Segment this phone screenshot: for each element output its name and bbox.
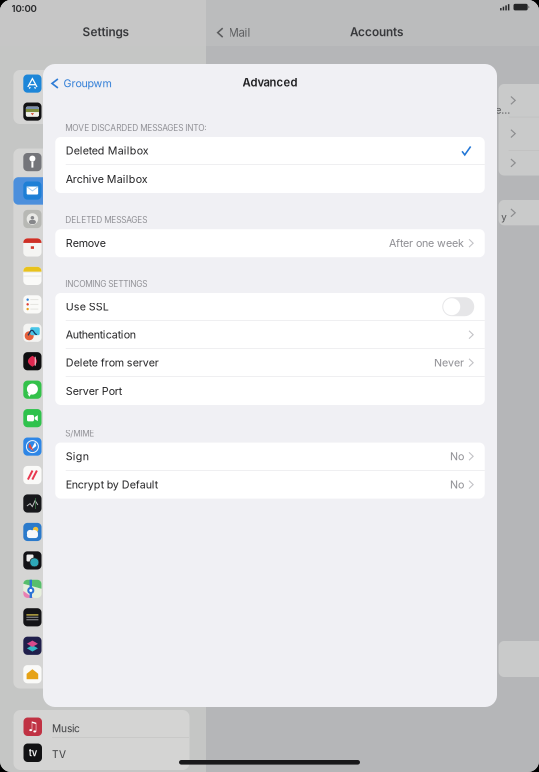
button[interactable]: Authentication — [55, 321, 485, 349]
staticText: Settings — [82, 25, 128, 39]
staticText: Use SSL — [66, 300, 109, 313]
button[interactable]: Server Port — [55, 377, 485, 405]
staticText: Never — [434, 356, 464, 369]
staticText: S/MIME — [65, 428, 94, 438]
button[interactable]: Archive Mailbox — [55, 165, 485, 193]
button[interactable]: Use SSL — [55, 293, 485, 321]
staticText: No — [450, 478, 464, 491]
staticText: Music — [52, 722, 80, 735]
staticText: TV — [52, 748, 66, 761]
staticText: Authentication — [66, 328, 136, 341]
button[interactable]: Groupwm — [43, 70, 119, 97]
staticText: Deleted Mailbox — [66, 144, 149, 157]
button[interactable]: Mail — [209, 19, 258, 47]
staticText: No — [450, 450, 464, 463]
button[interactable]: Delete from server — [55, 349, 485, 377]
staticText: Encrypt by Default — [66, 478, 158, 491]
staticText: Groupwm — [63, 77, 111, 90]
staticText: e... — [495, 103, 510, 116]
staticText: INCOMING SETTINGS — [65, 279, 147, 289]
staticText: After one week — [389, 237, 464, 250]
button[interactable]: Encrypt by Default — [55, 471, 485, 499]
staticText: Sign — [66, 450, 89, 463]
staticText: Archive Mailbox — [66, 172, 148, 185]
button[interactable]: Remove — [55, 229, 485, 257]
staticText: Advanced — [242, 76, 297, 89]
staticText: MOVE DISCARDED MESSAGES INTO: — [65, 123, 206, 133]
staticText: y — [501, 210, 507, 223]
staticText: Server Port — [66, 384, 122, 397]
staticText: Delete from server — [66, 356, 159, 369]
staticText: Remove — [66, 237, 106, 250]
button[interactable]: Deleted Mailbox — [55, 137, 485, 165]
staticText: ♫ — [27, 719, 39, 734]
staticText: DELETED MESSAGES — [65, 215, 147, 225]
staticText: 10:00 — [12, 3, 37, 14]
staticText: tv — [29, 747, 37, 758]
button[interactable]: Sign — [55, 443, 485, 471]
staticText: Accounts — [350, 25, 403, 39]
staticText: Mail — [228, 26, 250, 40]
